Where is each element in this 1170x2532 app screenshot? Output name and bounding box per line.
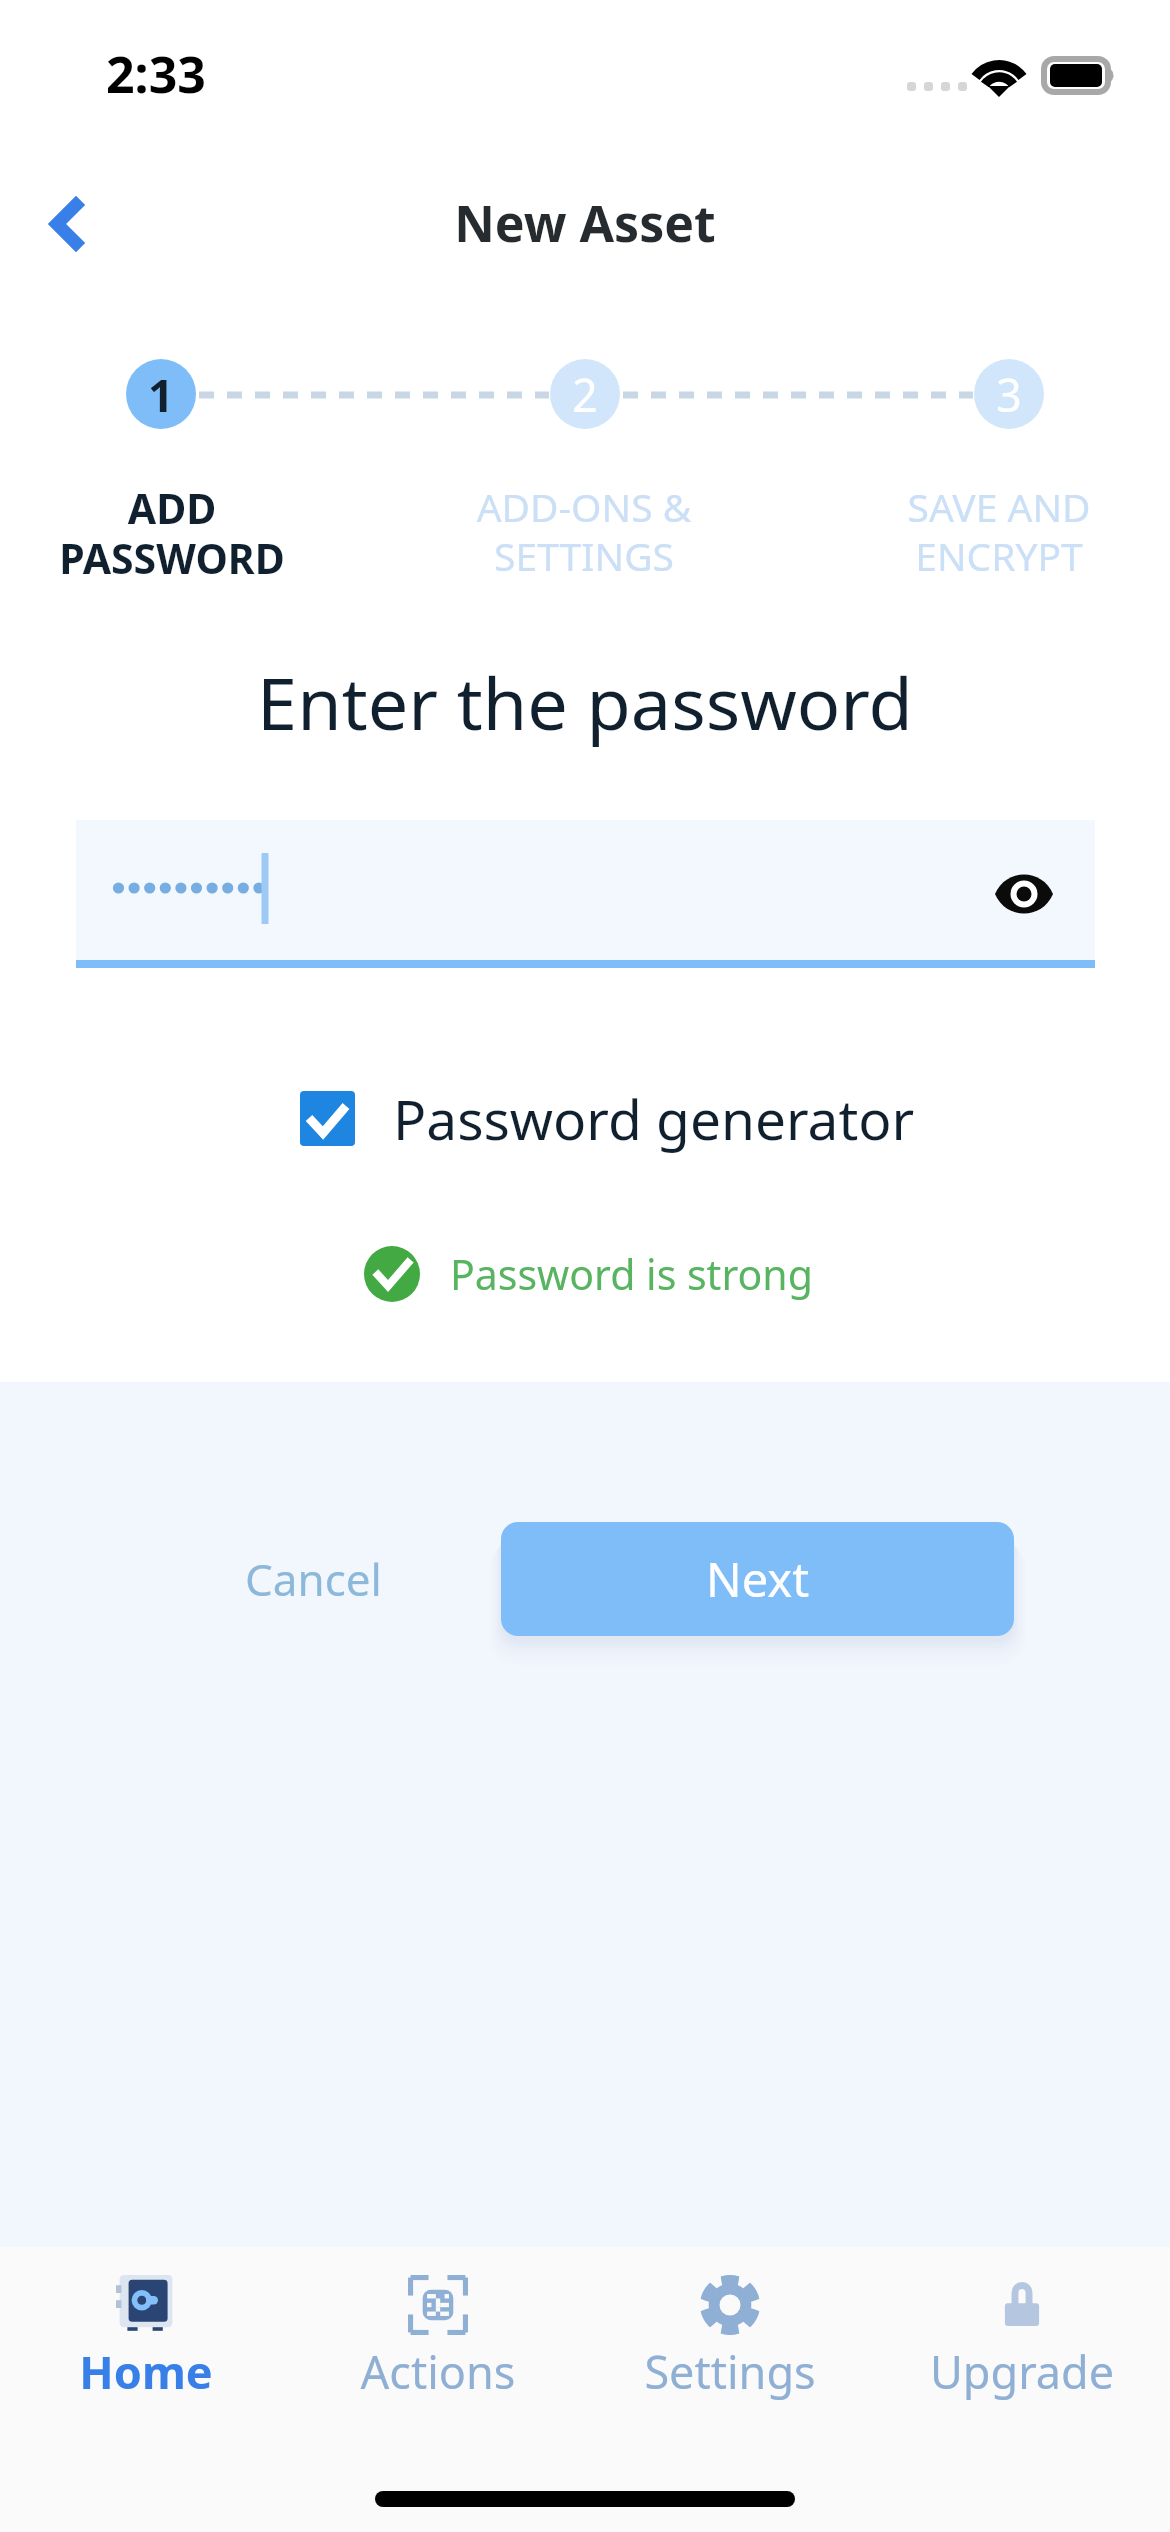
- staticText: Settings: [584, 2341, 876, 2402]
- staticText: Next: [706, 1547, 810, 1611]
- button[interactable]: Next: [501, 1522, 1014, 1636]
- button[interactable]: 3: [974, 359, 1044, 429]
- staticText: Home: [0, 2341, 292, 2402]
- button[interactable]: Cancel: [240, 1534, 386, 1624]
- button[interactable]: 2: [550, 359, 620, 429]
- staticText: 1: [148, 364, 174, 425]
- staticText: SAVE AND ENCRYPT: [829, 480, 1169, 583]
- button[interactable]: 1: [126, 359, 196, 429]
- staticText: Actions: [292, 2341, 584, 2402]
- button[interactable]: Show password: [968, 838, 1080, 950]
- button[interactable]: Actions: [292, 2247, 584, 2407]
- staticText: Upgrade: [876, 2341, 1168, 2402]
- staticText: ADD PASSWORD: [2, 480, 342, 586]
- button[interactable]: Password generator: [290, 1080, 915, 1156]
- button[interactable]: Upgrade: [876, 2247, 1168, 2407]
- button[interactable]: Home: [0, 2247, 292, 2407]
- staticText: Cancel: [245, 1549, 382, 1609]
- staticText: Password is strong: [450, 1246, 813, 1302]
- button[interactable]: Settings: [584, 2247, 876, 2407]
- staticText: 3: [996, 364, 1022, 425]
- staticText: New Asset: [0, 189, 1170, 257]
- button[interactable]: Password input: [76, 820, 1095, 968]
- staticText: ADD-ONS & SETTINGS: [414, 480, 754, 583]
- staticText: 2:33: [106, 40, 206, 108]
- staticText: Enter the password: [0, 653, 1170, 751]
- staticText: Password generator: [393, 1081, 915, 1156]
- staticText: 2: [572, 364, 598, 425]
- button[interactable]: Back: [18, 174, 114, 270]
